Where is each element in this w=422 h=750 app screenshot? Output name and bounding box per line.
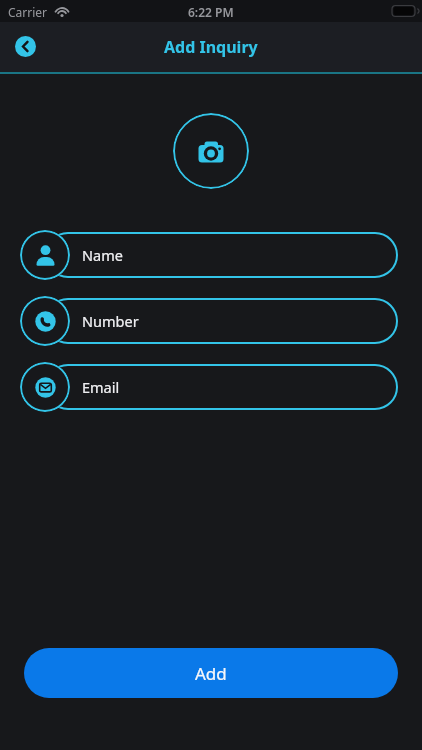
button[interactable]: Add bbox=[24, 648, 398, 698]
staticText: Number bbox=[82, 311, 139, 331]
staticText: Name bbox=[82, 245, 123, 265]
staticText: Add Inquiry bbox=[164, 36, 258, 58]
staticText: 6:22 PM bbox=[188, 4, 234, 20]
staticText: Add bbox=[195, 662, 227, 685]
staticText: Email bbox=[82, 377, 120, 397]
button[interactable]: Email bbox=[20, 362, 398, 412]
button[interactable] bbox=[173, 113, 249, 189]
button[interactable] bbox=[15, 36, 36, 57]
button[interactable]: Name bbox=[20, 230, 398, 280]
staticText: Carrier bbox=[8, 4, 48, 20]
button[interactable]: Number bbox=[20, 296, 398, 346]
